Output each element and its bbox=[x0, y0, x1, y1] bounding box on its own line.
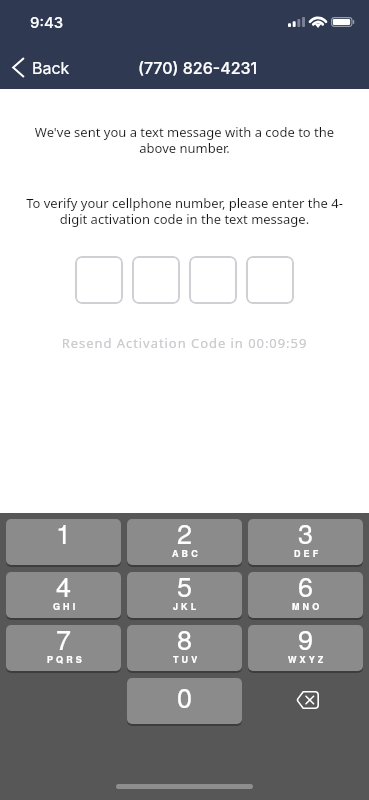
staticText: To verify your cellphone number, please … bbox=[26, 194, 343, 227]
button[interactable] bbox=[132, 256, 180, 304]
staticText: 9 bbox=[298, 625, 314, 658]
button[interactable]: 2 bbox=[127, 519, 242, 567]
staticText: TUV bbox=[173, 653, 201, 666]
staticText: 7 bbox=[56, 625, 72, 658]
staticText: We've sent you a text message with a cod… bbox=[34, 123, 335, 156]
staticText: 9:43 bbox=[30, 13, 64, 31]
staticText: (770) 826-4231 bbox=[138, 58, 258, 77]
staticText: GHI bbox=[53, 600, 79, 613]
button[interactable]: 4 bbox=[6, 572, 121, 620]
button[interactable]: Backspace bbox=[248, 678, 363, 726]
staticText: WXYZ bbox=[288, 653, 327, 666]
staticText: ABC bbox=[172, 547, 201, 560]
button[interactable]: 6 bbox=[248, 572, 363, 620]
staticText: 1 bbox=[56, 519, 72, 552]
button[interactable]: 7 bbox=[6, 625, 121, 673]
staticText: 3 bbox=[298, 519, 314, 552]
button[interactable] bbox=[246, 256, 294, 304]
staticText: 4 bbox=[56, 572, 72, 605]
button[interactable]: 8 bbox=[127, 625, 242, 673]
other: Back bbox=[12, 58, 24, 77]
button[interactable]: 3 bbox=[248, 519, 363, 567]
button[interactable]: 0 bbox=[127, 678, 242, 726]
staticText: 5 bbox=[177, 572, 193, 605]
button[interactable]: Resend Activation Code in 00:09:59 bbox=[0, 334, 369, 352]
button[interactable]: 5 bbox=[127, 572, 242, 620]
other: Backspace bbox=[296, 691, 319, 709]
staticText: 8 bbox=[177, 625, 193, 658]
staticText: 2 bbox=[177, 519, 193, 552]
button[interactable]: 1 bbox=[6, 519, 121, 567]
staticText: 6 bbox=[298, 572, 314, 605]
button[interactable] bbox=[189, 256, 237, 304]
staticText: Back bbox=[32, 58, 70, 77]
staticText: DEF bbox=[294, 547, 322, 560]
staticText: PQRS bbox=[47, 653, 85, 666]
staticText: MNO bbox=[292, 600, 323, 613]
staticText: JKL bbox=[173, 600, 200, 613]
button[interactable] bbox=[75, 256, 123, 304]
button[interactable]: 9 bbox=[248, 625, 363, 673]
button[interactable]: Back bbox=[0, 52, 80, 83]
staticText: 0 bbox=[177, 678, 193, 716]
